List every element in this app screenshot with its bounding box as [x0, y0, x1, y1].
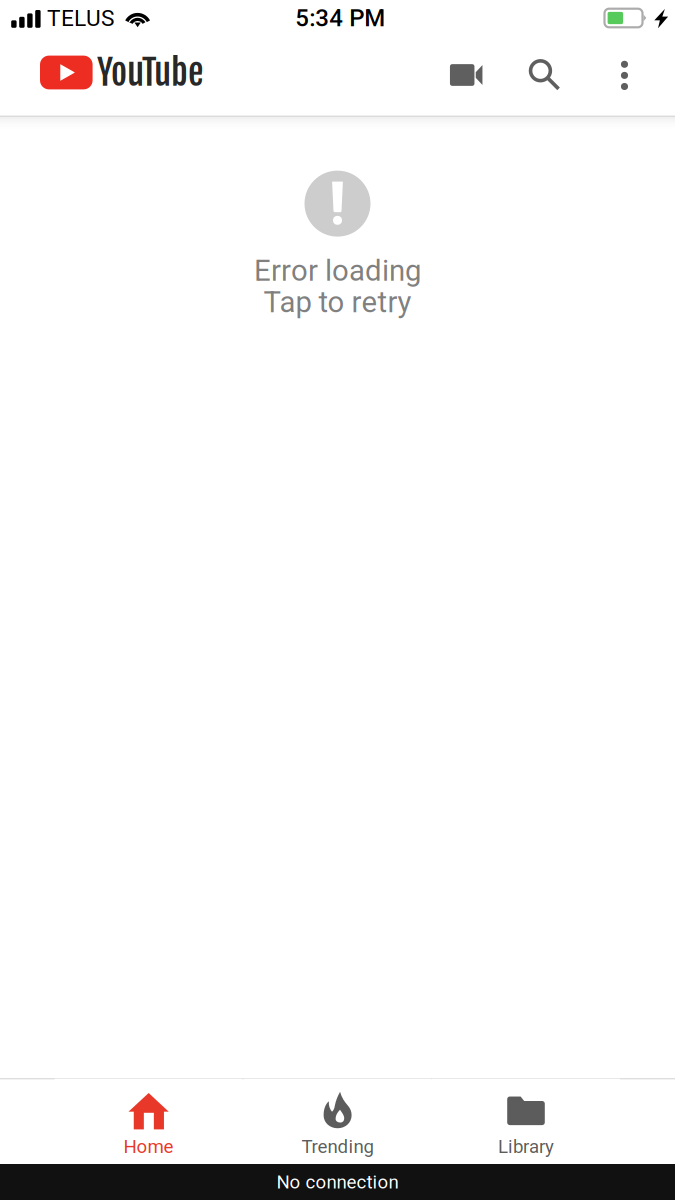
staticText: 5:34 PM	[295, 4, 385, 32]
staticText: Trending	[302, 1136, 374, 1158]
button[interactable]: More options	[608, 48, 641, 103]
staticText: Library	[498, 1136, 554, 1158]
button[interactable]: Home	[55, 1079, 243, 1164]
button[interactable]: Create	[437, 51, 495, 99]
staticText: No connection	[276, 1171, 398, 1193]
button[interactable]: Error loading. Tap to retry	[208, 159, 467, 331]
staticText: TELUS	[47, 5, 114, 31]
staticText: Tap to retry	[263, 285, 411, 319]
staticText: Error loading	[254, 254, 421, 288]
button[interactable]: Trending	[244, 1079, 432, 1164]
button[interactable]: Library	[432, 1079, 620, 1164]
button[interactable]: Search	[518, 48, 571, 101]
staticText: Home	[124, 1136, 174, 1158]
staticText: YouTube	[97, 51, 203, 94]
button[interactable]: YouTube	[31, 37, 212, 108]
